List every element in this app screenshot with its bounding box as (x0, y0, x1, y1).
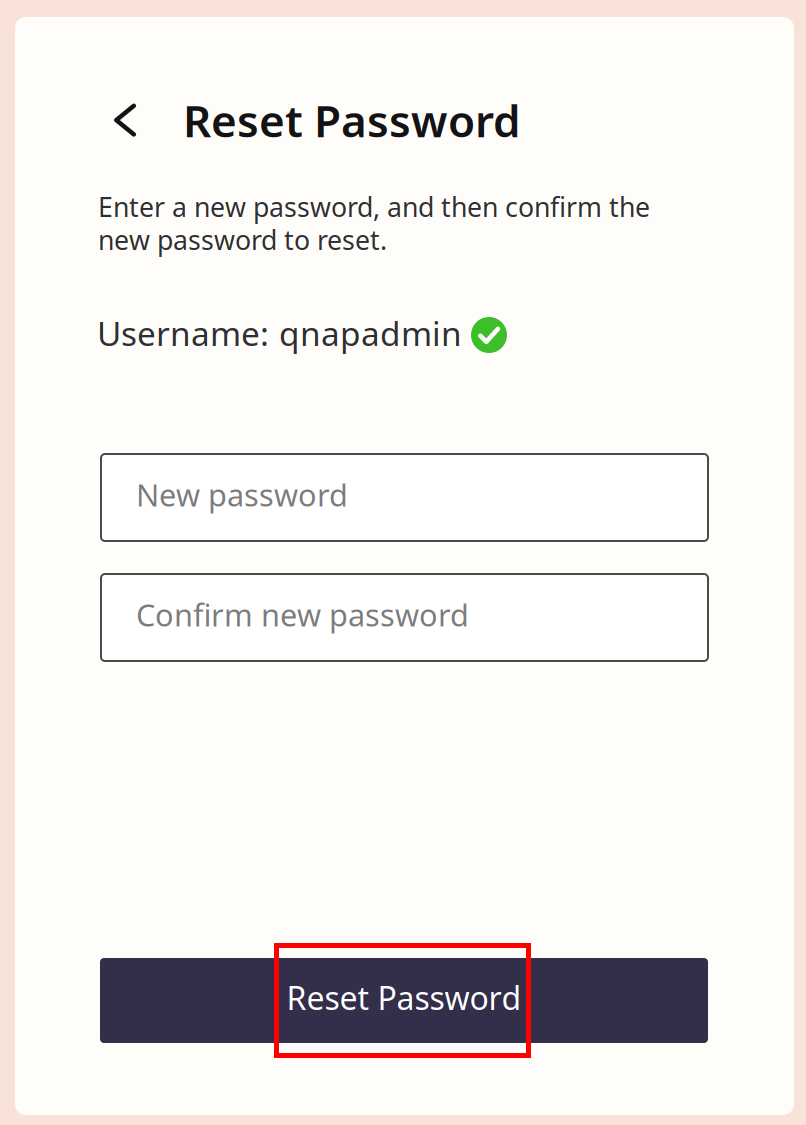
staticText: new password to reset. (98, 222, 387, 257)
button[interactable]: Reset Password (100, 958, 708, 1043)
staticText: Reset Password (183, 91, 521, 149)
staticText: New password (136, 474, 348, 515)
staticText: qnapadmin (279, 311, 462, 355)
staticText: Username: (97, 311, 269, 355)
button[interactable]: Back (103, 98, 147, 142)
button[interactable]: New password (100, 453, 709, 542)
staticText: Reset Password (286, 976, 521, 1019)
button[interactable]: Confirm new password (100, 573, 709, 662)
staticText: Confirm new password (136, 594, 469, 635)
staticText: Enter a new password, and then confirm t… (98, 189, 650, 224)
